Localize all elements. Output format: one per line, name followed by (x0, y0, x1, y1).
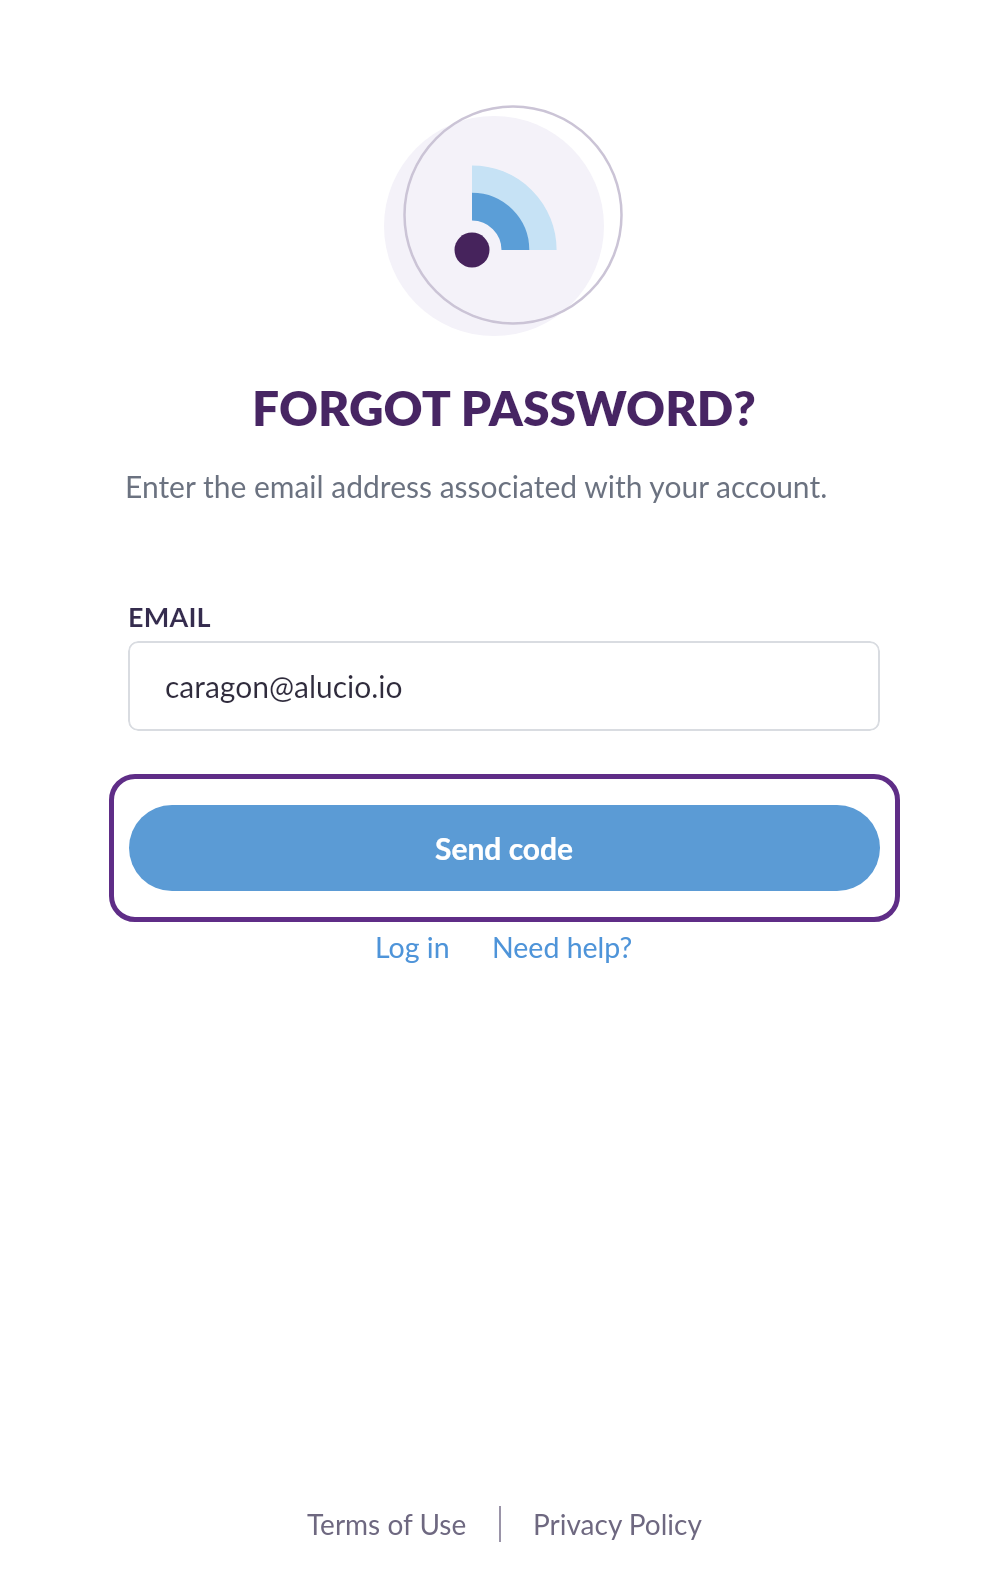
staticText: EMAIL (128, 600, 211, 632)
button[interactable]: Privacy Policy (533, 1507, 702, 1541)
staticText: Terms of Use (307, 1507, 467, 1541)
button[interactable]: Log in (375, 930, 450, 964)
button[interactable]: Send code (129, 805, 880, 891)
button[interactable]: caragon@alucio.io (128, 641, 880, 731)
staticText: FORGOT PASSWORD? (252, 379, 756, 437)
staticText: Need help? (492, 930, 633, 964)
staticText: Enter the email address associated with … (125, 468, 828, 504)
button[interactable]: Terms of Use (307, 1507, 467, 1541)
staticText: Privacy Policy (533, 1507, 702, 1541)
staticText: Log in (375, 930, 450, 964)
button[interactable]: Need help? (492, 930, 633, 964)
staticText: Send code (435, 830, 574, 866)
staticText: caragon@alucio.io (165, 668, 403, 704)
